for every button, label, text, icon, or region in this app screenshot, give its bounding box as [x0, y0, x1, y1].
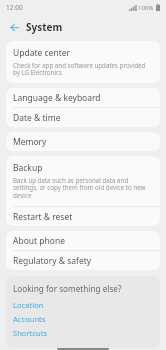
staticText: About phone: [13, 235, 66, 247]
staticText: Shortcuts: [13, 328, 48, 338]
staticText: Memory: [13, 136, 47, 148]
staticText: Back up data such as personal data and s…: [13, 176, 153, 200]
button[interactable]: Regulatory & safety: [6, 251, 160, 270]
staticText: Check for app and software updates provi…: [13, 61, 153, 77]
button[interactable]: Update center: [6, 41, 160, 83]
button[interactable]: Memory: [6, 132, 160, 151]
button[interactable]: Location: [13, 298, 153, 312]
button[interactable]: Shortcuts: [13, 326, 153, 340]
staticText: Regulatory & safety: [13, 255, 92, 267]
button[interactable]: Back: [6, 19, 22, 35]
staticText: Location: [13, 300, 44, 310]
staticText: Restart & reset: [13, 211, 73, 223]
staticText: 12:00: [6, 3, 23, 12]
staticText: Language & keyboard: [13, 92, 101, 104]
staticText: 100%: [138, 4, 154, 12]
staticText: System: [26, 20, 63, 34]
staticText: Looking for something else?: [13, 283, 122, 294]
staticText: Date & time: [13, 112, 61, 124]
button[interactable]: Backup: [6, 156, 160, 206]
staticText: Backup: [13, 162, 43, 174]
staticText: Update center: [13, 47, 71, 59]
button[interactable]: Language & keyboard: [6, 88, 160, 107]
button[interactable]: Accounts: [13, 312, 153, 326]
button[interactable]: Restart & reset: [6, 207, 160, 226]
staticText: Accounts: [13, 314, 46, 324]
button[interactable]: About phone: [6, 231, 160, 250]
button[interactable]: Date & time: [6, 108, 160, 127]
